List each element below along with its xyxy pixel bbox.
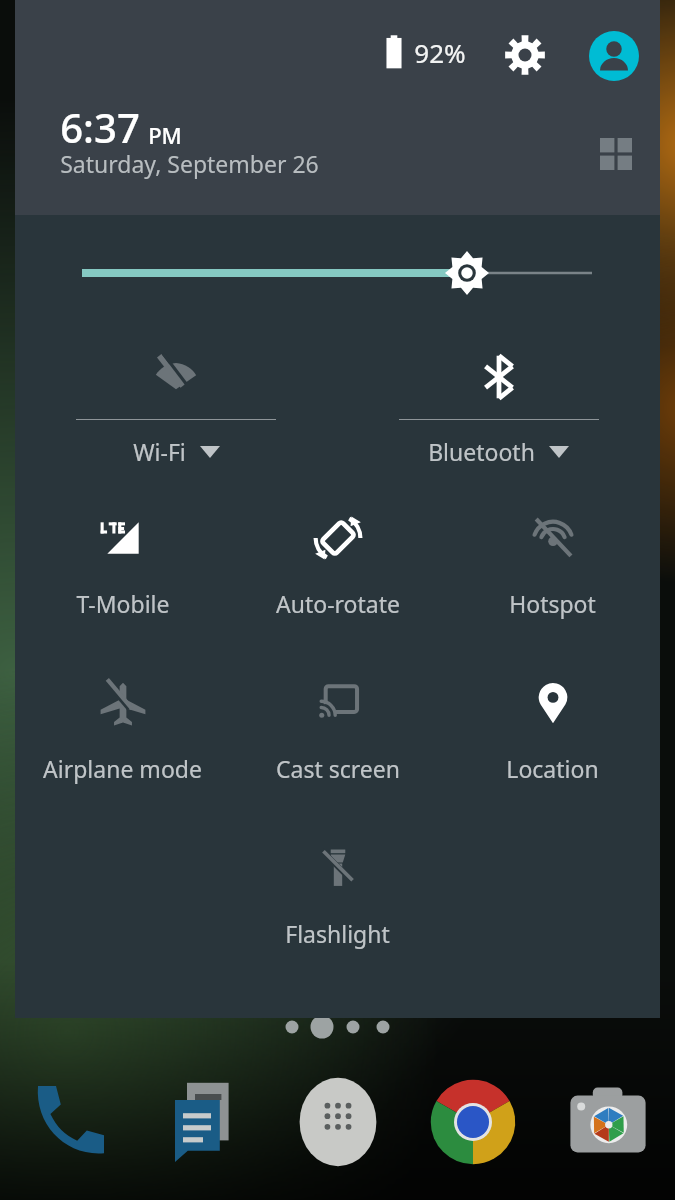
button[interactable]: Brightness	[15, 245, 660, 303]
button[interactable]: Apps	[270, 1063, 405, 1181]
button[interactable]: Auto-rotate	[230, 510, 445, 619]
button[interactable]: Chrome	[405, 1063, 540, 1181]
staticText: Hotspot	[509, 588, 596, 619]
staticText: PM	[148, 120, 182, 150]
button[interactable]: User	[589, 31, 639, 81]
button[interactable]: Battery 92 percent	[381, 33, 466, 71]
button[interactable]: Camera	[540, 1063, 675, 1181]
staticText: T-Mobile	[76, 588, 170, 619]
staticText: Flashlight	[285, 918, 390, 949]
button[interactable]: Expand quick settings	[590, 128, 642, 180]
staticText: Auto-rotate	[276, 588, 400, 619]
button[interactable]: Cast screen	[230, 675, 445, 784]
button[interactable]: Bluetooth	[337, 335, 660, 467]
staticText: Saturday, September 26	[60, 148, 319, 179]
staticText: Cast screen	[276, 753, 400, 784]
button[interactable]: Wi-Fi	[15, 335, 337, 467]
button[interactable]: Flashlight	[230, 840, 445, 949]
staticText: 6:37	[60, 100, 140, 154]
staticText: 92%	[414, 35, 466, 70]
button[interactable]: Phone	[0, 1063, 135, 1181]
button[interactable]: Hotspot	[445, 510, 660, 619]
button[interactable]: Saturday, September 26	[60, 148, 319, 179]
button[interactable]: Location	[445, 675, 660, 784]
button[interactable]: Airplane mode	[15, 675, 230, 784]
button[interactable]: 6:37	[60, 100, 182, 154]
staticText: Airplane mode	[43, 753, 202, 784]
button[interactable]: Messages	[135, 1063, 270, 1181]
button[interactable]: T-Mobile	[15, 510, 230, 619]
staticText: Wi-Fi	[133, 436, 186, 467]
button[interactable]: Settings	[501, 31, 549, 79]
staticText: Location	[506, 753, 599, 784]
staticText: Bluetooth	[428, 436, 535, 467]
